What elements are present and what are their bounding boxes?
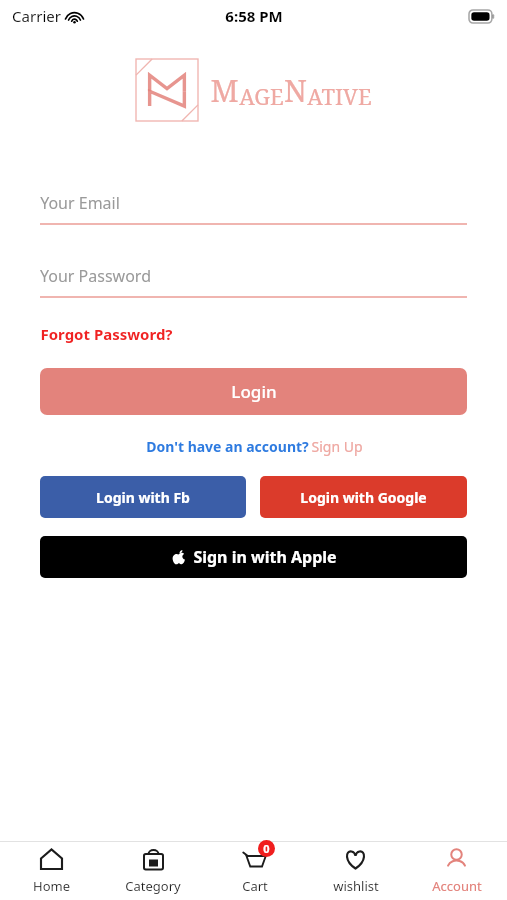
staticText: Sign Up bbox=[311, 437, 363, 456]
button[interactable]: Sign Up bbox=[311, 437, 363, 456]
staticText: AGE bbox=[239, 81, 284, 111]
button[interactable]: Login with Google bbox=[260, 476, 467, 518]
button[interactable]: Home bbox=[0, 842, 102, 900]
button[interactable]: Forgot Password? bbox=[40, 322, 173, 346]
button[interactable]: Login with Fb bbox=[40, 476, 246, 518]
button[interactable]: Your Password bbox=[40, 265, 467, 298]
staticText: Your Password bbox=[40, 265, 151, 287]
button[interactable]: Login bbox=[40, 368, 467, 415]
button[interactable]: Cart bbox=[204, 842, 305, 900]
staticText: Login bbox=[231, 380, 277, 403]
staticText: Category bbox=[125, 877, 181, 895]
button[interactable]: Your Email bbox=[40, 192, 467, 225]
staticText: Login with Fb bbox=[96, 488, 190, 507]
staticText: Carrier bbox=[12, 6, 61, 26]
button[interactable]: wishlist bbox=[305, 842, 406, 900]
staticText: Home bbox=[33, 877, 70, 895]
staticText: Your Email bbox=[40, 192, 120, 214]
button[interactable]: Category bbox=[102, 842, 204, 900]
staticText: M bbox=[210, 70, 239, 111]
staticText: Sign in with Apple bbox=[193, 546, 337, 568]
staticText: Login with Google bbox=[300, 488, 427, 507]
staticText: Don't have an account? bbox=[144, 437, 311, 456]
staticText: Forgot Password? bbox=[40, 324, 173, 344]
button[interactable]: Account bbox=[406, 842, 507, 900]
staticText: Cart bbox=[242, 877, 268, 895]
staticText: 6:58 PM bbox=[225, 6, 283, 26]
staticText: wishlist bbox=[333, 877, 379, 895]
staticText: ATIVE bbox=[307, 81, 372, 111]
staticText: 0 bbox=[263, 841, 270, 856]
staticText: N bbox=[284, 70, 307, 111]
staticText: Account bbox=[432, 877, 482, 895]
button[interactable]: Sign in with Apple bbox=[40, 536, 467, 578]
